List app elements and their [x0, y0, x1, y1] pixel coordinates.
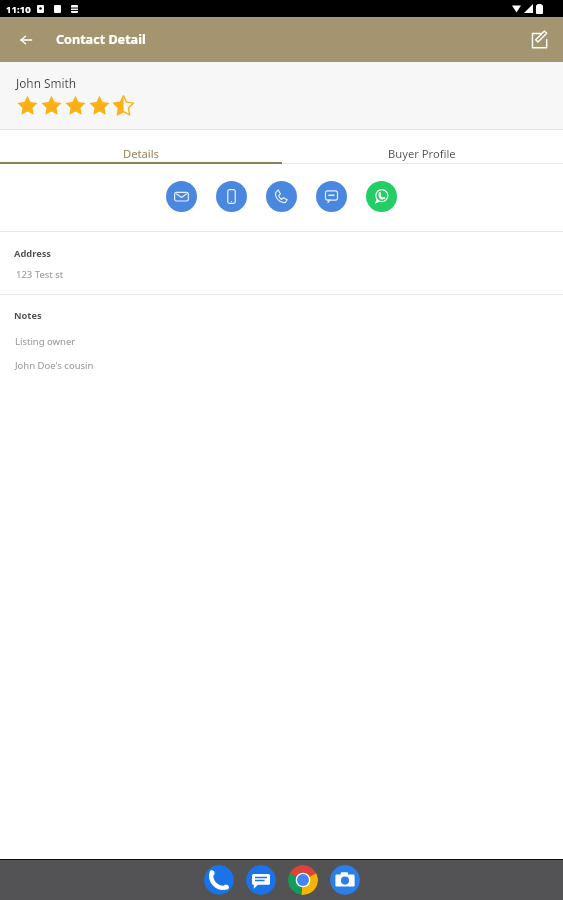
button[interactable]: Chrome	[288, 865, 318, 895]
button[interactable]: Details	[0, 131, 281, 163]
staticText: 11:10	[6, 3, 31, 16]
button[interactable]: Buyer Profile	[281, 131, 563, 163]
staticText: Address	[14, 247, 52, 260]
button[interactable]: Email	[166, 181, 197, 212]
button[interactable]: Message	[316, 181, 347, 212]
staticText: John Doe's cousin	[15, 359, 94, 372]
staticText: Details	[123, 146, 159, 161]
staticText: Listing owner	[15, 335, 76, 348]
button[interactable]: Mobile	[216, 181, 247, 212]
staticText: Contact Detail	[56, 31, 146, 48]
button[interactable]: Call	[266, 181, 297, 212]
button[interactable]: Camera	[330, 865, 360, 895]
staticText: John Smith	[16, 75, 77, 91]
button[interactable]: Messages	[246, 865, 276, 895]
staticText: Buyer Profile	[388, 146, 456, 161]
button[interactable]: Back	[12, 26, 40, 54]
button[interactable]: Phone	[204, 865, 234, 895]
staticText: Notes	[14, 309, 42, 322]
staticText: 123 Test st	[16, 268, 64, 281]
button[interactable]: WhatsApp	[366, 181, 397, 212]
button[interactable]: Edit	[524, 25, 554, 55]
